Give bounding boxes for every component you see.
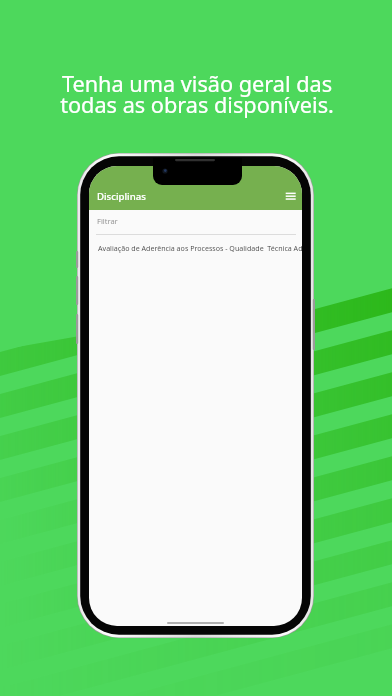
- staticText: Tenha uma visão geral das todas as obras…: [1, 69, 392, 120]
- staticText: Filtrar: [97, 216, 118, 226]
- button[interactable]: Open navigation menu: [281, 184, 299, 202]
- staticText: Avaliação de Aderência aos Processos - Q…: [98, 243, 302, 253]
- button[interactable]: Avaliação de Aderência aos Processos - Q…: [89, 234, 302, 260]
- staticText: Disciplinas: [97, 190, 146, 203]
